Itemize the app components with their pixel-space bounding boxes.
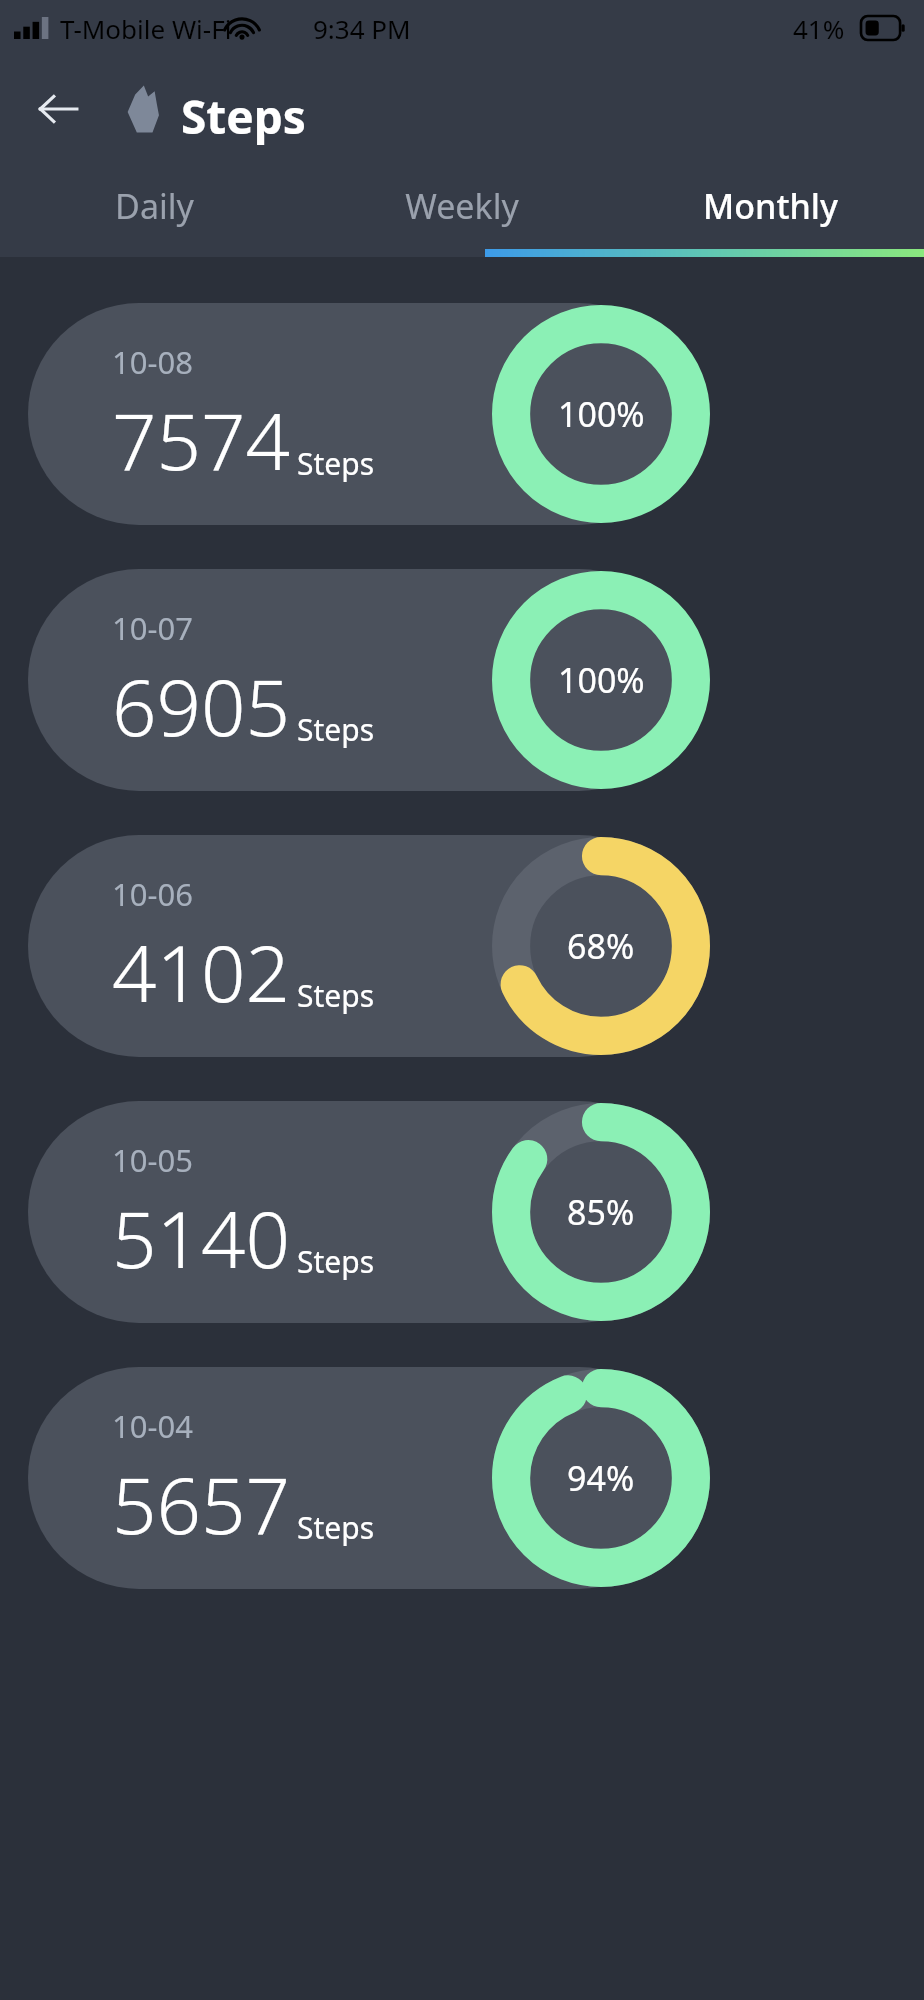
staticText: 94% — [567, 1455, 635, 1501]
staticText: 5140 — [112, 1185, 291, 1291]
button[interactable]: 10-05 — [0, 1101, 924, 1323]
button[interactable]: 10-04 — [0, 1367, 924, 1589]
staticText: 85% — [567, 1189, 635, 1235]
staticText: 100% — [558, 657, 645, 703]
staticText: Steps — [297, 1241, 375, 1282]
staticText: 68% — [567, 923, 635, 969]
staticText: 10-06 — [112, 873, 193, 915]
staticText: 10-05 — [112, 1139, 193, 1181]
staticText: Steps — [181, 85, 306, 148]
button[interactable]: Monthly — [616, 163, 924, 249]
staticText: 10-04 — [112, 1405, 193, 1447]
staticText: T-Mobile Wi-Fi — [60, 11, 232, 46]
staticText: Steps — [297, 709, 375, 750]
button[interactable]: 10-06 — [0, 835, 924, 1057]
staticText: 4102 — [112, 919, 291, 1025]
staticText: 6905 — [112, 653, 291, 759]
button[interactable]: 10-07 — [0, 569, 924, 791]
staticText: 7574 — [112, 387, 291, 493]
staticText: 100% — [558, 391, 645, 437]
button[interactable]: Weekly — [308, 163, 616, 249]
staticText: 10-08 — [112, 341, 193, 383]
staticText: Steps — [297, 975, 375, 1016]
staticText: 9:34 PM — [313, 11, 411, 46]
button[interactable]: Back — [26, 77, 90, 141]
staticText: Daily — [115, 183, 194, 229]
staticText: Steps — [297, 1507, 375, 1548]
staticText: Steps — [297, 443, 375, 484]
button[interactable]: Daily — [0, 163, 308, 249]
staticText: 5657 — [112, 1451, 291, 1557]
staticText: Weekly — [405, 183, 519, 229]
staticText: Monthly — [703, 183, 838, 229]
staticText: 41% — [793, 11, 845, 46]
staticText: 10-07 — [112, 607, 193, 649]
button[interactable]: 10-08 — [0, 303, 924, 525]
